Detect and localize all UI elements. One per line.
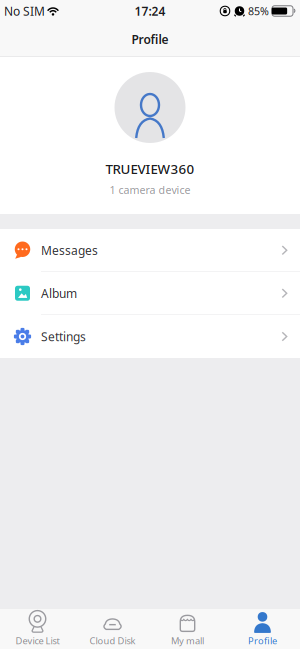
staticText: 1 camera device [109,183,190,197]
button[interactable]: Settings [0,315,300,358]
staticText: Album [41,285,77,301]
staticText: Device List [15,635,59,647]
staticText: Settings [41,328,86,344]
staticText: No SIM [4,3,45,19]
button[interactable]: Album [0,272,300,315]
staticText: TRUEVIEW360 [105,160,194,178]
staticText: Profile [131,31,168,47]
button[interactable]: My mall [150,609,225,649]
staticText: Messages [41,242,98,258]
staticText: My mall [171,635,204,647]
button[interactable]: Profile [225,609,300,649]
button[interactable]: Device List [0,609,75,649]
button[interactable]: Messages [0,229,300,272]
staticText: Cloud Disk [89,635,135,647]
staticText: 85% [248,4,269,18]
button[interactable]: Cloud Disk [75,609,150,649]
staticText: Profile [248,635,277,647]
staticText: 17:24 [134,3,165,19]
